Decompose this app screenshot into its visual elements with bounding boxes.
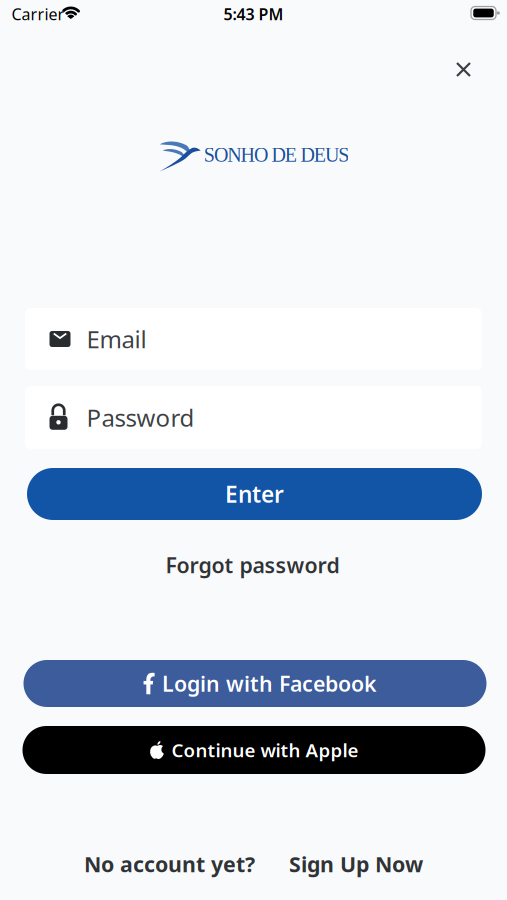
- staticText: 5:43 PM: [223, 3, 283, 25]
- staticText: Email: [86, 323, 146, 355]
- button[interactable]: Sign Up Now: [289, 850, 423, 878]
- staticText: No account yet?: [84, 850, 255, 878]
- button[interactable]: [447, 53, 480, 86]
- staticText: Carrier: [11, 3, 64, 25]
- staticText: Forgot password: [165, 551, 339, 579]
- staticText: Continue with Apple: [171, 738, 358, 762]
- button[interactable]: Password: [25, 386, 482, 449]
- button[interactable]: Login with Facebook: [23, 660, 486, 707]
- staticText: Sign Up Now: [289, 850, 423, 878]
- staticText: Password: [86, 402, 194, 433]
- button[interactable]: Email: [25, 308, 482, 370]
- staticText: Enter: [225, 479, 284, 509]
- button[interactable]: Continue with Apple: [22, 726, 485, 774]
- staticText: SONHO DE DEUS: [204, 144, 349, 166]
- button[interactable]: Enter: [27, 468, 482, 520]
- staticText: Login with Facebook: [162, 669, 377, 698]
- button[interactable]: Forgot password: [165, 551, 339, 579]
